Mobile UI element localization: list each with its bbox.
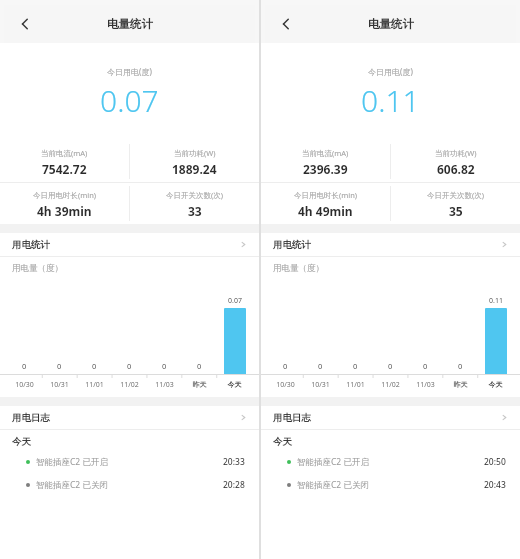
staticText: 0 (127, 361, 132, 371)
staticText: 今日用电时长(min) (294, 190, 358, 200)
button[interactable]: 用电统计 (261, 233, 520, 256)
staticText: 0.07 (100, 80, 159, 121)
staticText: 11/03 (147, 380, 182, 390)
staticText: 33 (188, 203, 202, 217)
staticText: 昨天 (182, 380, 217, 389)
staticText: 10/30 (7, 380, 42, 390)
staticText: 用电量（度） (273, 263, 324, 274)
staticText: 20:50 (484, 456, 506, 468)
staticText: 0.11 (361, 80, 420, 121)
staticText: 0 (57, 361, 62, 371)
staticText: 4h 49min (298, 203, 353, 217)
staticText: 2396.39 (303, 161, 348, 175)
staticText: 用电量（度） (12, 263, 63, 274)
staticText: 0 (22, 361, 27, 371)
staticText: 10/31 (303, 380, 338, 390)
staticText: 智能插座C2 已开启 (36, 456, 108, 468)
staticText: 电量统计 (368, 17, 414, 31)
staticText: 11/03 (408, 380, 443, 390)
staticText: 当前电流(mA) (41, 148, 88, 158)
staticText: 0.11 (489, 296, 503, 306)
staticText: 用电统计 (273, 239, 311, 251)
staticText: 今日用电(度) (368, 66, 413, 77)
staticText: 11/01 (338, 380, 373, 390)
staticText: 11/02 (112, 380, 147, 390)
staticText: 今天 (273, 436, 292, 448)
button[interactable]: 用电日志 (261, 406, 520, 429)
staticText: 1889.24 (172, 161, 217, 175)
staticText: 智能插座C2 已开启 (297, 456, 369, 468)
staticText: 当前电流(mA) (302, 148, 349, 158)
staticText: 今日开关次数(次) (427, 190, 484, 200)
staticText: 11/02 (373, 380, 408, 390)
button[interactable]: Back (271, 9, 301, 39)
staticText: 0 (353, 361, 358, 371)
staticText: 今天 (12, 436, 31, 448)
staticText: 0 (458, 361, 463, 371)
staticText: 昨天 (443, 380, 478, 389)
staticText: 0 (162, 361, 167, 371)
staticText: 20:28 (223, 479, 245, 491)
staticText: 用电统计 (12, 239, 50, 251)
staticText: 用电日志 (273, 412, 311, 424)
button[interactable]: 智能插座C2 已开启 (261, 450, 520, 473)
staticText: 今日用电(度) (107, 66, 152, 77)
staticText: 0.07 (228, 296, 242, 306)
button[interactable]: 智能插座C2 已关闭 (261, 473, 520, 496)
staticText: 电量统计 (107, 17, 153, 31)
staticText: 10/30 (268, 380, 303, 390)
staticText: 20:33 (223, 456, 245, 468)
button[interactable]: 智能插座C2 已关闭 (0, 473, 259, 496)
staticText: 智能插座C2 已关闭 (36, 479, 108, 491)
button[interactable]: 用电日志 (0, 406, 259, 429)
staticText: 今日开关次数(次) (166, 190, 223, 200)
staticText: 606.82 (437, 161, 475, 175)
button[interactable]: 用电统计 (0, 233, 259, 256)
button[interactable]: Back (10, 9, 40, 39)
staticText: 0 (283, 361, 288, 371)
button[interactable]: 智能插座C2 已开启 (0, 450, 259, 473)
staticText: 今日用电时长(min) (33, 190, 97, 200)
staticText: 当前功耗(W) (435, 148, 477, 158)
staticText: 7542.72 (42, 161, 87, 175)
staticText: 今天 (217, 380, 252, 389)
staticText: 智能插座C2 已关闭 (297, 479, 369, 491)
staticText: 4h 39min (37, 203, 92, 217)
staticText: 20:43 (484, 479, 506, 491)
staticText: 0 (92, 361, 97, 371)
staticText: 用电日志 (12, 412, 50, 424)
staticText: 35 (449, 203, 463, 217)
staticText: 今天 (478, 380, 513, 389)
staticText: 0 (423, 361, 428, 371)
staticText: 0 (197, 361, 202, 371)
staticText: 10/31 (42, 380, 77, 390)
staticText: 当前功耗(W) (174, 148, 216, 158)
staticText: 0 (318, 361, 323, 371)
staticText: 11/01 (77, 380, 112, 390)
staticText: 0 (388, 361, 393, 371)
